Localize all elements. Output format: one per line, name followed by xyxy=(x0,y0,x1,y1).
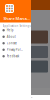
button[interactable]: Privacy Policy xyxy=(0,46,31,53)
button[interactable]: Feedback xyxy=(0,53,31,59)
button[interactable]: Contact xyxy=(0,40,31,46)
button[interactable]: About xyxy=(0,33,31,40)
button[interactable]: Help xyxy=(0,27,31,33)
staticText: Help xyxy=(7,28,14,32)
staticText: Privacy Policy xyxy=(7,48,23,51)
staticText: Contact xyxy=(7,41,17,45)
staticText: Share Manager xyxy=(3,16,31,21)
staticText: Application Settings xyxy=(2,24,30,28)
staticText: Feedback xyxy=(7,54,19,58)
staticText: About xyxy=(7,35,16,38)
